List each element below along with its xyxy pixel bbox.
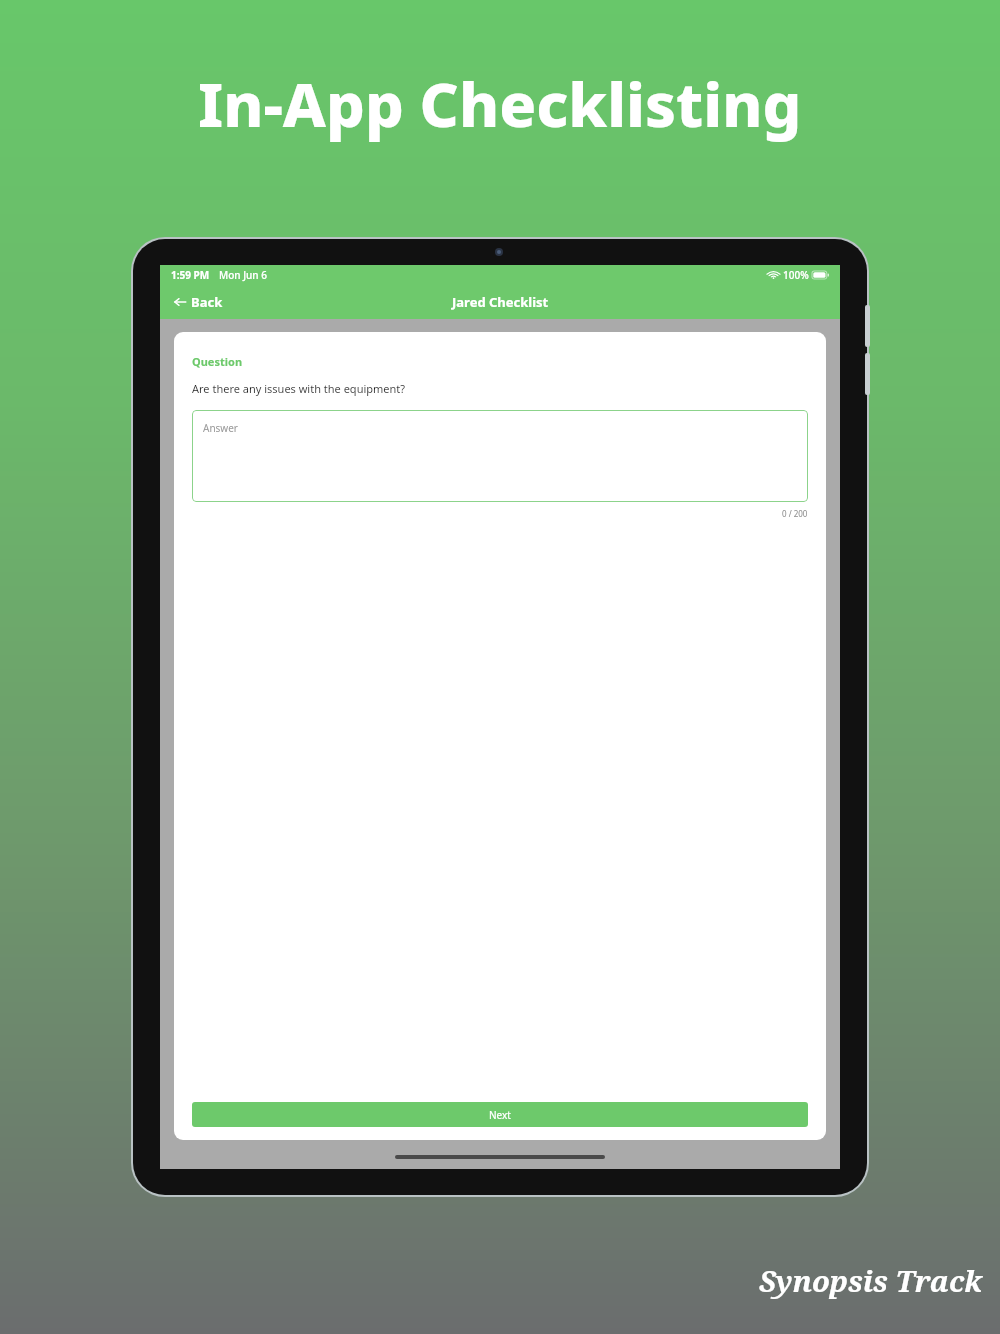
- staticText: Mon Jun 6: [219, 268, 267, 282]
- other: Back: [173, 295, 187, 309]
- staticText: Next: [489, 1108, 511, 1122]
- staticText: Question: [192, 354, 243, 369]
- staticText: 100%: [783, 268, 809, 282]
- staticText: Synopsis Track: [759, 1261, 982, 1300]
- staticText: 0 / 200: [782, 508, 808, 519]
- staticText: Are there any issues with the equipment?: [192, 381, 406, 396]
- staticText: 1:59 PM: [171, 268, 210, 282]
- button[interactable]: Back: [169, 289, 227, 315]
- staticText: Answer: [203, 421, 238, 435]
- button[interactable]: Answer: [192, 410, 808, 502]
- staticText: Back: [191, 293, 223, 311]
- staticText: In-App Checklisting: [198, 62, 802, 145]
- button[interactable]: Next: [192, 1102, 808, 1127]
- staticText: Jared Checklist: [452, 293, 549, 311]
